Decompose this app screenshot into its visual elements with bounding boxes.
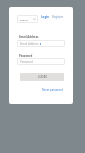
staticText: Password xyxy=(20,60,33,64)
button[interactable]: English xyxy=(17,15,38,23)
staticText: LOGIN xyxy=(38,75,47,79)
button[interactable]: Email Address xyxy=(17,40,65,47)
button[interactable]: Login xyxy=(39,13,51,21)
button[interactable]: Password xyxy=(17,58,65,65)
button[interactable]: LOGIN xyxy=(20,73,64,81)
staticText: Login xyxy=(41,15,49,19)
staticText: Register xyxy=(52,15,64,19)
button[interactable]: Reset password xyxy=(40,86,65,94)
staticText: English xyxy=(20,18,29,21)
staticText: Email Address xyxy=(20,42,39,46)
button[interactable]: Register xyxy=(50,13,66,21)
staticText: Password xyxy=(19,54,33,58)
staticText: Reset password xyxy=(42,88,63,92)
staticText: Email Address xyxy=(19,35,39,39)
